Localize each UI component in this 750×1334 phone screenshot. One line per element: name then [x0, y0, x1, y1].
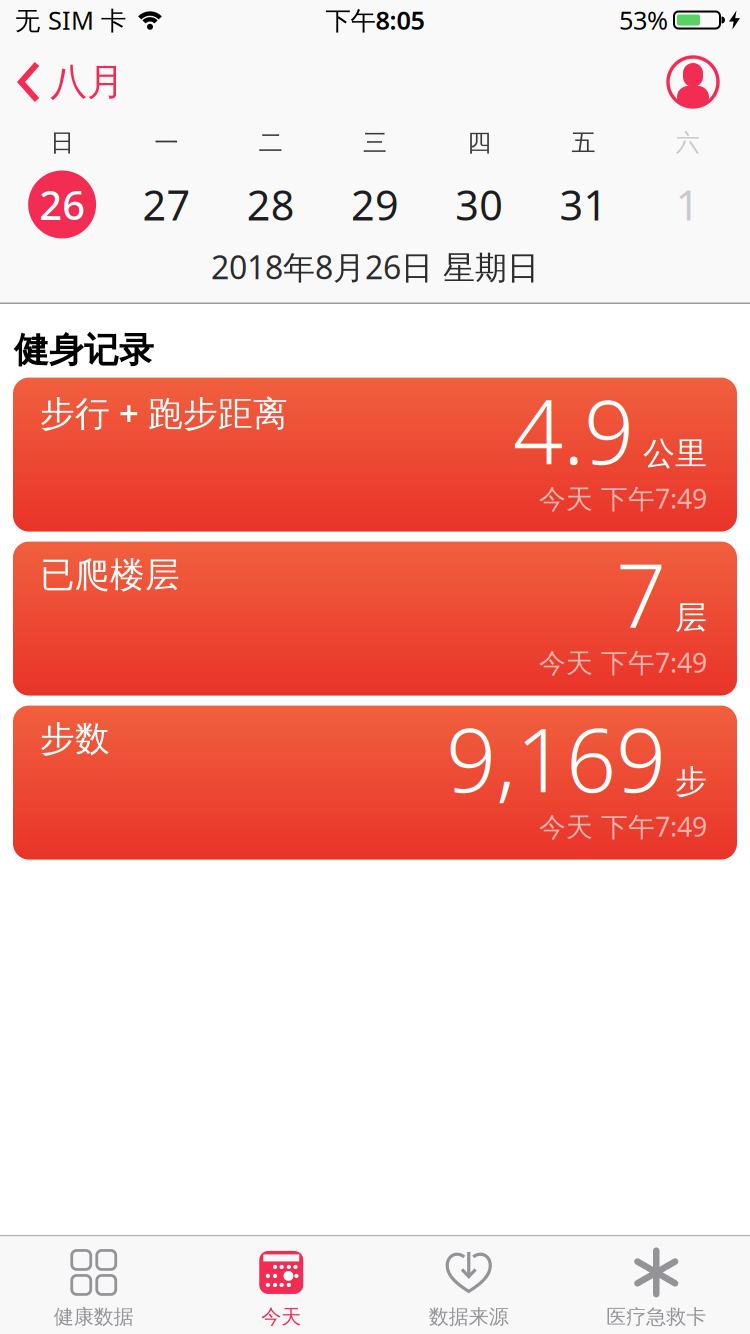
staticText: 健康数据 [54, 1304, 134, 1329]
button[interactable]: 健康数据 [0, 1248, 187, 1329]
button[interactable]: 医疗急救卡 [562, 1248, 750, 1329]
button[interactable]: 步行 + 跑步距离 [0, 378, 750, 532]
button[interactable]: 数据来源 [375, 1248, 562, 1329]
staticText: 今天 下午7:49 [539, 809, 707, 844]
staticText: 29 [351, 177, 399, 232]
staticText: 下午8:05 [325, 3, 424, 37]
staticText: 健身记录 [14, 329, 154, 372]
staticText: 日 [50, 128, 74, 157]
staticText: 二 [259, 128, 283, 157]
staticText: 今天 下午7:49 [539, 481, 707, 516]
button[interactable]: 八月 [0, 59, 124, 105]
staticText: 步数 [40, 718, 110, 760]
staticText: 28 [247, 177, 295, 232]
staticText: 层 [675, 598, 707, 637]
staticText: 4.9 [513, 372, 634, 488]
button[interactable]: 已爬楼层 [0, 542, 750, 696]
staticText: 1 [676, 177, 700, 232]
staticText: 一 [154, 128, 178, 157]
button[interactable]: 28 [219, 169, 323, 239]
staticText: 步行 + 跑步距离 [40, 390, 288, 436]
staticText: 2018年8月26日 星期日 [211, 245, 539, 288]
staticText: 已爬楼层 [40, 554, 180, 596]
button[interactable]: 1 [636, 169, 740, 239]
staticText: 今天 [261, 1304, 301, 1329]
button[interactable]: 29 [323, 169, 427, 239]
button[interactable]: 26 [10, 169, 114, 239]
staticText: 27 [142, 177, 190, 232]
staticText: 数据来源 [429, 1304, 509, 1329]
staticText: 八月 [50, 59, 124, 105]
staticText: 五 [572, 128, 596, 157]
staticText: 9,169 [446, 700, 666, 816]
staticText: 公里 [643, 434, 707, 473]
staticText: 7 [616, 536, 666, 652]
button[interactable]: 31 [531, 169, 636, 239]
staticText: 53% [619, 3, 668, 37]
staticText: 无 SIM 卡 [15, 3, 126, 37]
staticText: 31 [560, 177, 608, 232]
staticText: 四 [467, 128, 491, 157]
staticText: 三 [363, 128, 387, 157]
button[interactable]: 今天 [187, 1248, 375, 1329]
staticText: 30 [455, 177, 503, 232]
staticText: 今天 下午7:49 [539, 645, 707, 680]
button[interactable]: 30 [427, 169, 531, 239]
button[interactable]: 步数 [0, 706, 750, 860]
staticText: 26 [39, 178, 85, 231]
staticText: 医疗急救卡 [606, 1304, 706, 1329]
button[interactable] [667, 56, 750, 108]
button[interactable]: 27 [114, 169, 219, 239]
staticText: 步 [675, 762, 707, 801]
staticText: 六 [676, 128, 700, 157]
